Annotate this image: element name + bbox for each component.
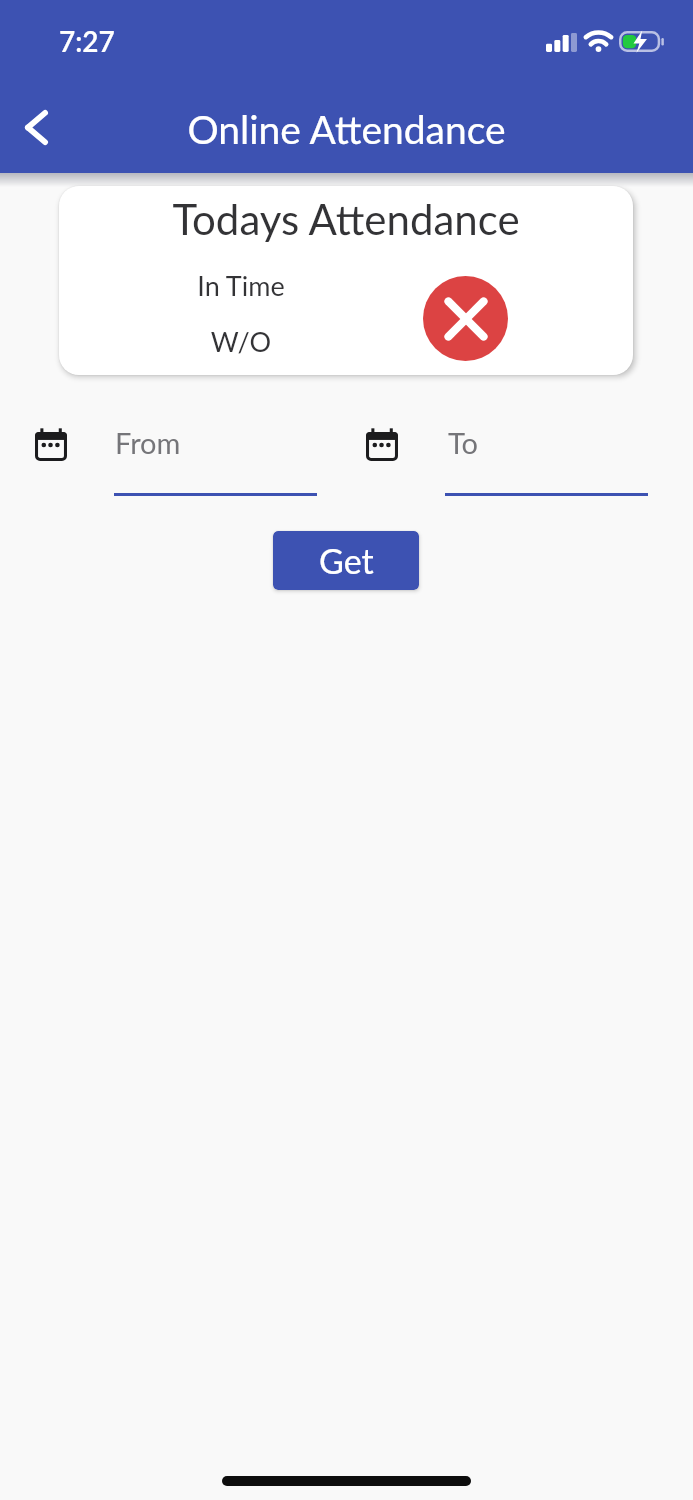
button[interactable]: Absent — [423, 276, 508, 361]
staticText: To — [448, 425, 479, 460]
staticText: Online Attendance — [0, 106, 693, 153]
button[interactable]: Get — [273, 531, 419, 590]
button[interactable]: Todays Attendance — [59, 186, 633, 375]
button[interactable]: Back — [10, 101, 62, 153]
staticText: W/O — [157, 325, 325, 357]
staticText: Todays Attendance — [59, 194, 633, 244]
staticText: From — [115, 425, 181, 460]
staticText: In Time — [157, 269, 325, 301]
staticText: 7:27 — [59, 24, 115, 58]
staticText: Get — [319, 540, 374, 581]
